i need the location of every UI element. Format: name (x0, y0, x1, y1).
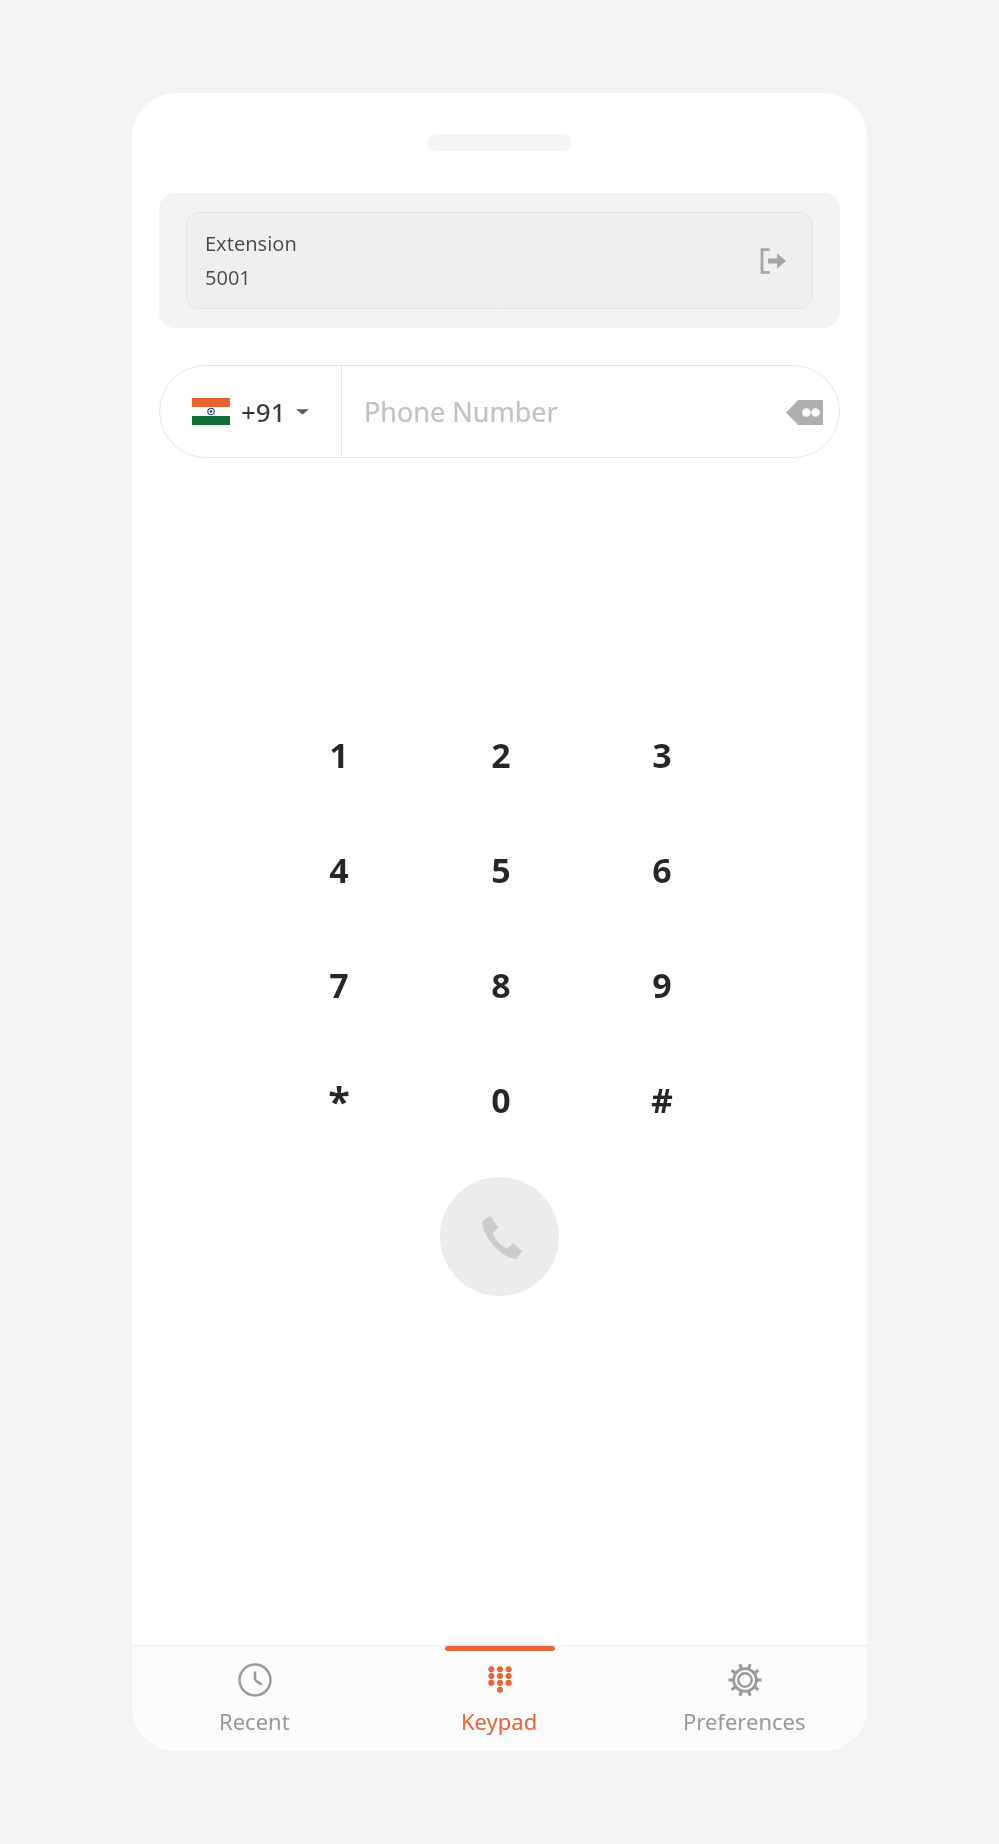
button[interactable]: 1 (292, 708, 385, 801)
staticText: 6 (652, 847, 672, 893)
staticText: 7 (329, 962, 349, 1008)
staticText: Preferences (683, 1706, 806, 1736)
staticText: * (328, 1073, 350, 1127)
staticText: # (651, 1077, 673, 1123)
button[interactable]: 3 (615, 708, 708, 801)
button[interactable]: Phone Number (342, 365, 768, 458)
staticText: 4 (329, 847, 349, 893)
button[interactable]: # (615, 1053, 708, 1146)
button[interactable]: Extension (186, 212, 813, 309)
button[interactable]: 4 (292, 823, 385, 916)
staticText: Extension (205, 230, 297, 257)
staticText: +91 (241, 394, 286, 429)
staticText: 2 (491, 732, 511, 778)
button[interactable]: Call (440, 1177, 559, 1296)
button[interactable]: 9 (615, 938, 708, 1031)
staticText: 5 (491, 847, 511, 893)
staticText: 5001 (205, 264, 251, 291)
button[interactable]: * (292, 1053, 385, 1146)
button[interactable]: 0 (454, 1053, 547, 1146)
button[interactable]: 2 (454, 708, 547, 801)
button[interactable]: Recent (132, 1646, 377, 1751)
staticText: 3 (652, 732, 672, 778)
button[interactable]: Keypad (377, 1646, 622, 1751)
button[interactable]: Log out (748, 238, 794, 284)
staticText: 9 (652, 962, 672, 1008)
button[interactable]: Backspace (768, 376, 840, 448)
staticText: 1 (329, 732, 349, 778)
staticText: 0 (491, 1077, 511, 1123)
staticText: 8 (491, 962, 511, 1008)
button[interactable]: 5 (454, 823, 547, 916)
staticText: Phone Number (364, 393, 558, 430)
staticText: Keypad (461, 1706, 538, 1736)
staticText: Recent (219, 1706, 290, 1736)
button[interactable]: 7 (292, 938, 385, 1031)
button[interactable]: Preferences (622, 1646, 867, 1751)
button[interactable]: 8 (454, 938, 547, 1031)
button[interactable]: 6 (615, 823, 708, 916)
button[interactable]: +91 (159, 365, 341, 458)
